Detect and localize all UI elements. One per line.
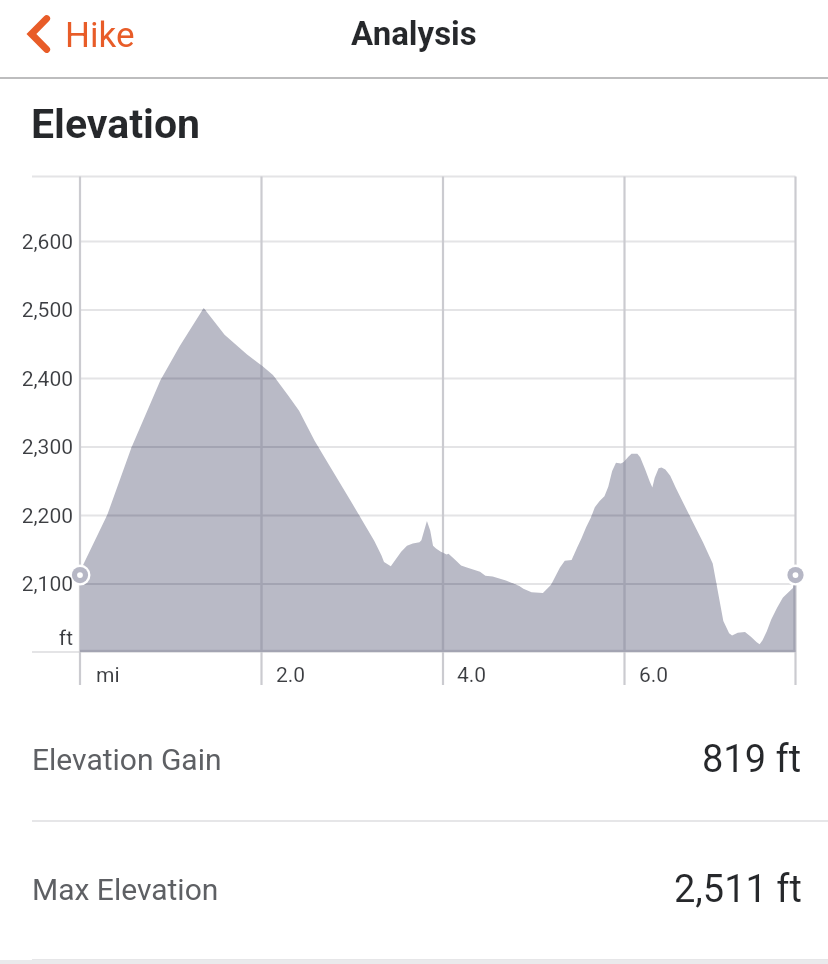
staticText: 2,600 bbox=[0, 230, 73, 255]
staticText: 2,500 bbox=[0, 298, 73, 323]
button[interactable]: Elevation Gain bbox=[0, 692, 828, 822]
staticText: Max Elevation bbox=[32, 872, 219, 907]
staticText: 4.0 bbox=[457, 663, 487, 688]
staticText: 2,200 bbox=[0, 504, 73, 529]
staticText: Analysis bbox=[351, 14, 477, 53]
staticText: Elevation bbox=[31, 100, 201, 148]
staticText: ft bbox=[0, 626, 73, 651]
staticText: 2,100 bbox=[0, 572, 73, 597]
staticText: Elevation Gain bbox=[32, 742, 222, 777]
staticText: 6.0 bbox=[639, 663, 669, 688]
staticText: 819 ft bbox=[702, 737, 802, 782]
staticText: 2,300 bbox=[0, 435, 73, 460]
other: Back bbox=[27, 12, 51, 56]
button[interactable]: Max Elevation bbox=[0, 823, 828, 961]
button[interactable]: Back bbox=[29, 6, 135, 74]
staticText: Hike bbox=[65, 15, 135, 56]
staticText: 2,511 ft bbox=[674, 867, 802, 912]
staticText: 2.0 bbox=[276, 663, 306, 688]
staticText: 2,400 bbox=[0, 367, 73, 392]
staticText: mi bbox=[96, 663, 120, 688]
